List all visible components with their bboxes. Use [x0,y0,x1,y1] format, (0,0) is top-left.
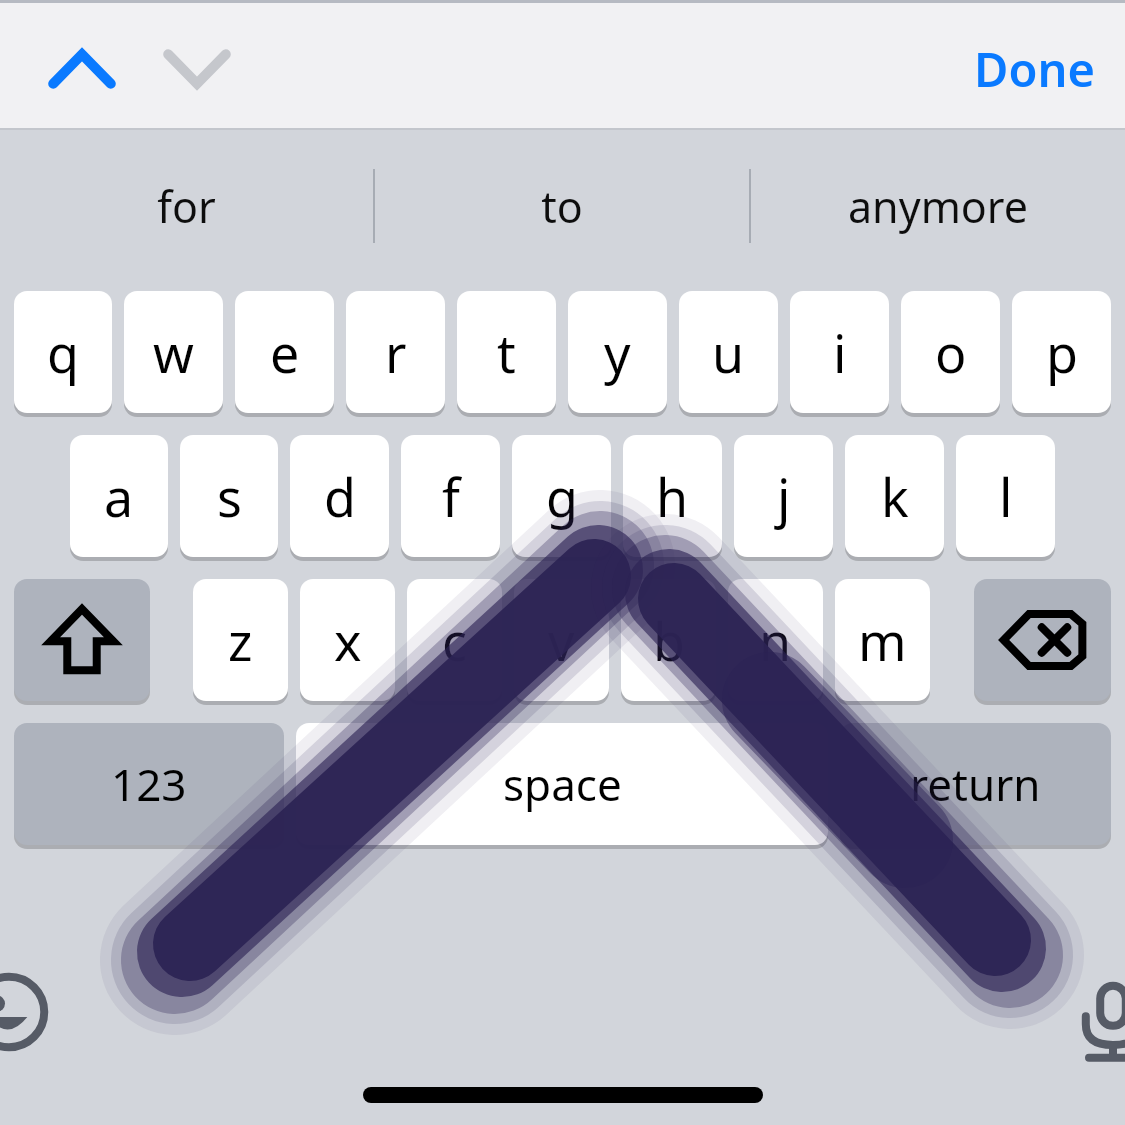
staticText: x [334,605,362,676]
button[interactable]: Next field [155,27,239,111]
staticText: j [777,461,791,532]
staticText: Done [974,37,1095,101]
staticText: n [759,605,792,676]
staticText: r [385,317,407,388]
button[interactable]: w [124,291,223,413]
staticText: h [656,461,689,532]
staticText: t [497,317,516,388]
button[interactable]: s [180,435,278,557]
button[interactable]: r [346,291,445,413]
button[interactable]: e [235,291,334,413]
button[interactable]: x [300,579,395,701]
button[interactable]: q [14,291,112,413]
staticText: u [712,317,745,388]
staticText: b [653,605,685,676]
button[interactable]: a [70,435,168,557]
staticText: a [104,461,134,532]
button[interactable]: t [457,291,556,413]
button[interactable]: j [734,435,833,557]
button[interactable]: z [193,579,288,701]
button[interactable]: Backspace [974,579,1111,701]
staticText: w [153,317,194,388]
button[interactable]: p [1012,291,1111,413]
button[interactable]: 123 [14,723,284,845]
button[interactable]: Emoji [0,971,50,1053]
staticText: q [47,317,79,388]
button[interactable]: l [956,435,1055,557]
button[interactable]: Dictation [1073,981,1125,1061]
staticText: m [858,605,907,676]
staticText: anymore [848,177,1028,236]
button[interactable]: o [901,291,1000,413]
staticText: z [228,605,253,676]
button[interactable]: h [623,435,722,557]
staticText: p [1046,317,1078,388]
button[interactable]: space [296,723,828,845]
staticText: o [935,317,967,388]
button[interactable]: b [621,579,716,701]
staticText: k [881,461,909,532]
button[interactable]: Previous field [40,27,124,111]
staticText: g [546,461,578,532]
button[interactable]: u [679,291,778,413]
staticText: 123 [111,754,187,814]
button[interactable]: v [514,579,609,701]
button[interactable]: for [0,130,373,282]
button[interactable]: n [728,579,823,701]
staticText: space [503,754,622,814]
button[interactable]: Done [954,21,1115,117]
staticText: l [999,461,1013,532]
staticText: v [548,605,575,676]
staticText: i [833,317,847,388]
button[interactable]: i [790,291,889,413]
staticText: return [910,754,1041,814]
button[interactable]: c [407,579,502,701]
button[interactable]: anymore [751,130,1125,282]
staticText: to [541,177,583,236]
button[interactable]: k [845,435,944,557]
staticText: s [217,461,242,532]
button[interactable]: m [835,579,930,701]
staticText: e [270,317,300,388]
staticText: f [442,461,460,532]
staticText: c [442,605,467,676]
button[interactable]: Shift [14,579,150,701]
button[interactable]: d [290,435,389,557]
button[interactable]: g [512,435,611,557]
staticText: for [157,177,216,236]
button[interactable]: to [375,130,749,282]
button[interactable]: f [401,435,500,557]
button[interactable]: y [568,291,667,413]
button[interactable]: return [840,723,1111,845]
staticText: d [324,461,356,532]
staticText: y [604,317,631,388]
